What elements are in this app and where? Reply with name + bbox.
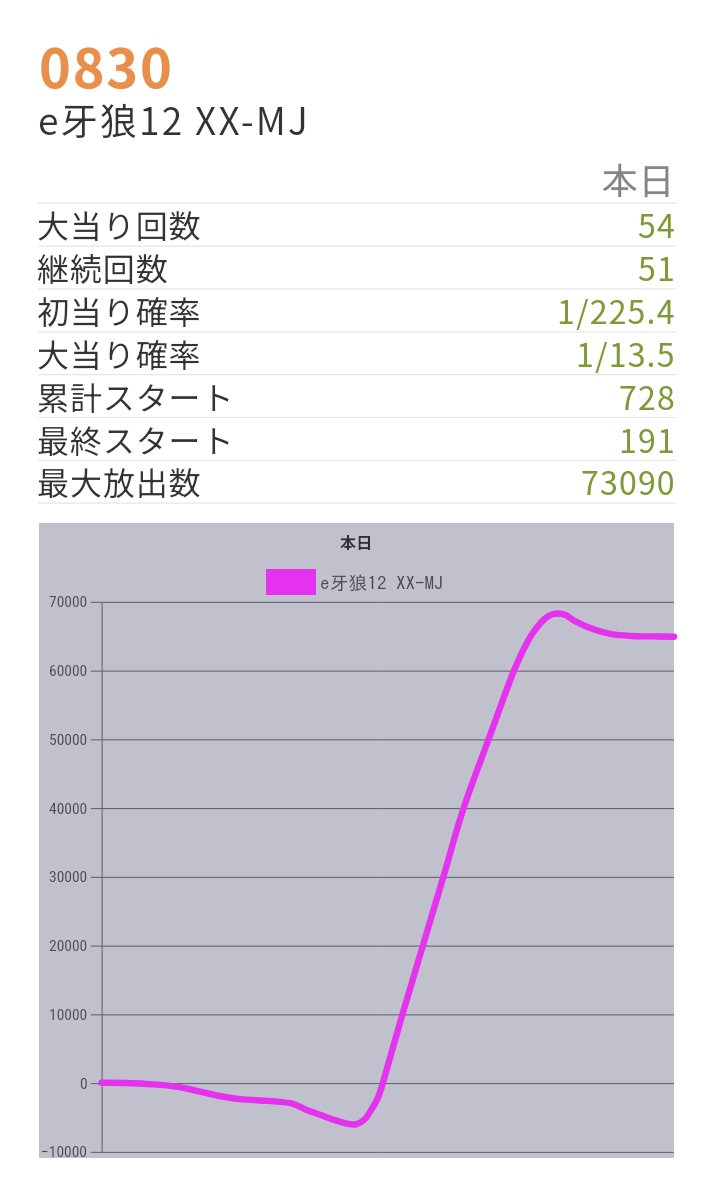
staticText: 54 [638, 201, 676, 244]
staticText: 1/13.5 [576, 330, 676, 373]
button[interactable]: 最終スタート [38, 418, 676, 461]
button[interactable]: 最大放出数 [38, 460, 676, 503]
button[interactable]: 継続回数 [38, 246, 676, 289]
staticText: 累計スタート [37, 373, 235, 416]
staticText: 本日 [340, 530, 373, 553]
staticText: 60000 [49, 662, 88, 680]
staticText: 本日 [602, 152, 676, 204]
staticText: 51 [638, 244, 676, 287]
staticText: 0 [80, 1075, 88, 1093]
staticText: −10000 [41, 1143, 88, 1161]
staticText: 30000 [49, 868, 88, 886]
staticText: 初当り確率 [37, 287, 202, 330]
button[interactable]: 初当り確率 [38, 289, 676, 332]
button[interactable]: 大当り確率 [38, 332, 676, 375]
staticText: 継続回数 [37, 244, 169, 287]
staticText: 728 [619, 373, 676, 416]
staticText: 10000 [49, 1006, 88, 1024]
staticText: 1/225.4 [557, 287, 676, 330]
staticText: 73090 [581, 458, 676, 501]
staticText: 20000 [49, 937, 88, 955]
staticText: 最終スタート [37, 416, 235, 459]
staticText: 40000 [49, 800, 88, 818]
staticText: 191 [619, 416, 676, 459]
staticText: 大当り確率 [37, 330, 202, 373]
staticText: 0830 [39, 25, 174, 103]
staticText: e牙狼12 XX-MJ [38, 92, 310, 146]
button[interactable]: 累計スタート [38, 375, 676, 418]
staticText: e牙狼12 XX-MJ [320, 573, 444, 592]
staticText: 50000 [49, 731, 88, 749]
button[interactable]: 大当り回数 [38, 203, 676, 246]
staticText: 大当り回数 [37, 201, 202, 244]
staticText: 70000 [49, 593, 88, 611]
staticText: 最大放出数 [37, 458, 202, 501]
